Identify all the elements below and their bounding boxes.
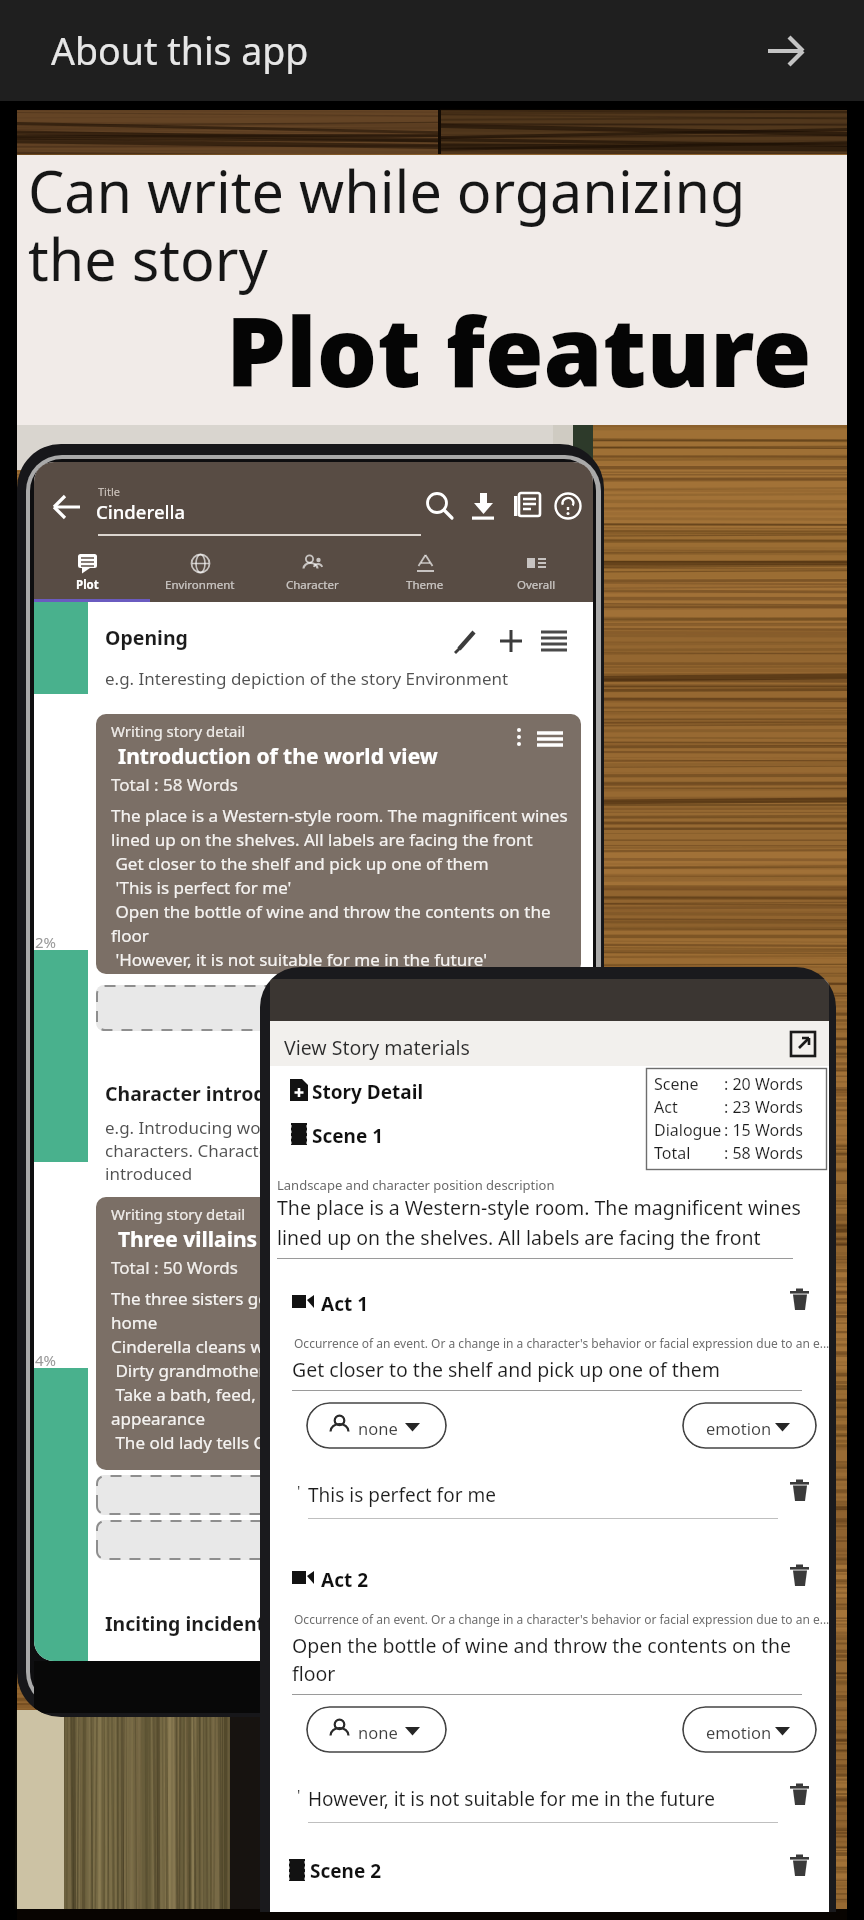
staticText: Act 2 xyxy=(321,1567,369,1593)
staticText: The three sisters go out, leaving Cinder… xyxy=(111,1287,472,1454)
button[interactable]: About this app xyxy=(0,17,331,84)
button[interactable]: Delete xyxy=(788,1563,814,1589)
button[interactable]: Add xyxy=(496,626,526,656)
staticText: Can write while organizing the story xyxy=(28,152,746,297)
staticText: Open the bottle of wine and throw the co… xyxy=(292,1632,792,1687)
button[interactable]: Delete xyxy=(788,1853,814,1879)
staticText: Inciting incident xyxy=(105,1610,266,1637)
staticText: Landscape and character position descrip… xyxy=(277,1176,555,1194)
staticText: Plot feature xyxy=(226,285,812,414)
button[interactable]: none xyxy=(306,1706,447,1753)
staticText: Theme xyxy=(406,577,444,593)
staticText: Plot xyxy=(76,577,99,593)
button[interactable]: emotion xyxy=(682,1706,817,1753)
staticText: Dialogue xyxy=(654,1119,722,1141)
staticText: Character introduction xyxy=(105,1080,328,1107)
staticText: The place is a Western-style room. The m… xyxy=(111,804,568,971)
button[interactable]: Environment xyxy=(145,553,255,593)
staticText: Occurrence of an event. Or a change in a… xyxy=(294,1335,830,1351)
staticText: Overall xyxy=(517,577,556,593)
staticText: none xyxy=(358,1417,398,1439)
button[interactable]: App preview video xyxy=(17,110,847,1909)
staticText: Writing story detail xyxy=(111,1204,246,1224)
staticText: Act 1 xyxy=(321,1291,369,1317)
staticText: Environment xyxy=(165,577,235,593)
button[interactable]: Delete xyxy=(788,1782,814,1808)
staticText: This is perfect for me xyxy=(308,1482,496,1508)
staticText: About this app xyxy=(51,25,309,76)
button[interactable]: Open in new window xyxy=(788,1029,818,1059)
staticText: View Story materials xyxy=(284,1034,470,1061)
staticText: Story Detail xyxy=(312,1079,424,1105)
staticText: Total xyxy=(654,1142,691,1164)
staticText: : 15 Words xyxy=(724,1119,803,1141)
staticText: Title xyxy=(98,484,120,499)
button[interactable]: Open app page xyxy=(757,22,815,80)
button[interactable]: Plot xyxy=(34,553,142,593)
staticText: Act xyxy=(654,1096,678,1118)
staticText: Cinderella xyxy=(96,499,186,524)
button[interactable]: Reorder xyxy=(540,628,568,656)
staticText: Scene 2 xyxy=(310,1858,382,1884)
staticText: Three villains xyxy=(118,1225,258,1254)
button[interactable]: Character xyxy=(257,553,367,593)
staticText: emotion xyxy=(706,1721,772,1743)
staticText: : 58 Words xyxy=(724,1142,803,1164)
staticText: Total : 58 Words xyxy=(111,773,238,796)
staticText: Scene xyxy=(654,1073,699,1095)
staticText: none xyxy=(358,1721,398,1743)
staticText: Scene 1 xyxy=(312,1123,384,1149)
button[interactable]: Delete xyxy=(788,1287,814,1313)
staticText: ' xyxy=(297,1480,301,1500)
staticText: e.g. Introducing world and characters. C… xyxy=(105,1116,345,1185)
button[interactable]: Writing story detail xyxy=(96,714,581,974)
button[interactable]: Theme xyxy=(370,553,480,593)
button[interactable]: Edit xyxy=(452,626,482,656)
staticText: Introduction of the world view xyxy=(118,742,438,771)
staticText: ' xyxy=(297,1784,301,1804)
button[interactable]: Overall xyxy=(481,553,591,593)
staticText: Total : 50 Words xyxy=(111,1256,238,1279)
staticText: 2% xyxy=(35,932,57,952)
staticText: Opening xyxy=(105,624,188,651)
staticText: emotion xyxy=(706,1417,772,1439)
staticText: : 23 Words xyxy=(724,1096,803,1118)
button[interactable]: Delete xyxy=(788,1478,814,1504)
staticText: Writing story detail xyxy=(111,721,246,741)
staticText: 4% xyxy=(35,1350,57,1370)
button[interactable]: emotion xyxy=(682,1402,817,1449)
button[interactable]: none xyxy=(306,1402,447,1449)
staticText: e.g. Interesting depiction of the story … xyxy=(105,667,509,690)
button[interactable]: Writing story detail xyxy=(96,1197,581,1470)
staticText: However, it is not suitable for me in th… xyxy=(308,1786,716,1812)
staticText: Occurrence of an event. Or a change in a… xyxy=(294,1611,830,1627)
staticText: : 20 Words xyxy=(724,1073,803,1095)
staticText: Character xyxy=(286,577,339,593)
staticText: Get closer to the shelf and pick up one … xyxy=(292,1356,721,1383)
staticText: The place is a Western-style room. The m… xyxy=(277,1194,801,1250)
